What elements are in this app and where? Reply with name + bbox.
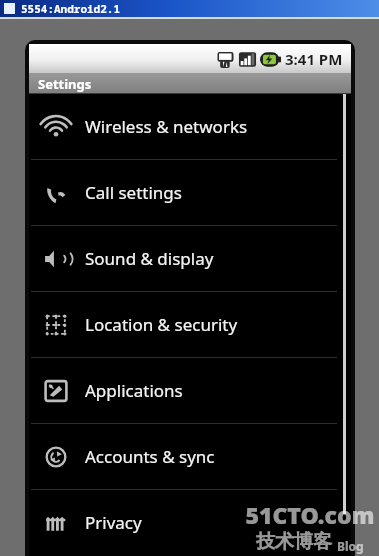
- staticText: Privacy: [85, 511, 142, 534]
- button[interactable]: Applications: [29, 358, 351, 423]
- staticText: 3:41 PM: [285, 49, 343, 69]
- staticText: 51CTO.com: [245, 499, 375, 530]
- staticText: Location & security: [85, 313, 238, 336]
- button[interactable]: Call settings: [29, 160, 351, 225]
- button[interactable]: Sound & display: [29, 226, 351, 291]
- staticText: Call settings: [85, 181, 182, 204]
- staticText: Sound & display: [85, 247, 214, 270]
- button[interactable]: Wireless & networks: [29, 94, 351, 159]
- staticText: Wireless & networks: [85, 115, 248, 138]
- staticText: 5554:Android2.1: [21, 1, 120, 16]
- button[interactable]: Location & security: [29, 292, 351, 357]
- staticText: Settings: [38, 75, 92, 93]
- staticText: Accounts & sync: [85, 445, 215, 468]
- button[interactable]: Privacy: [29, 490, 351, 555]
- staticText: Applications: [85, 379, 183, 402]
- staticText: 技术博客: [256, 530, 332, 554]
- button[interactable]: Accounts & sync: [29, 424, 351, 489]
- staticText: Blog: [337, 538, 364, 554]
